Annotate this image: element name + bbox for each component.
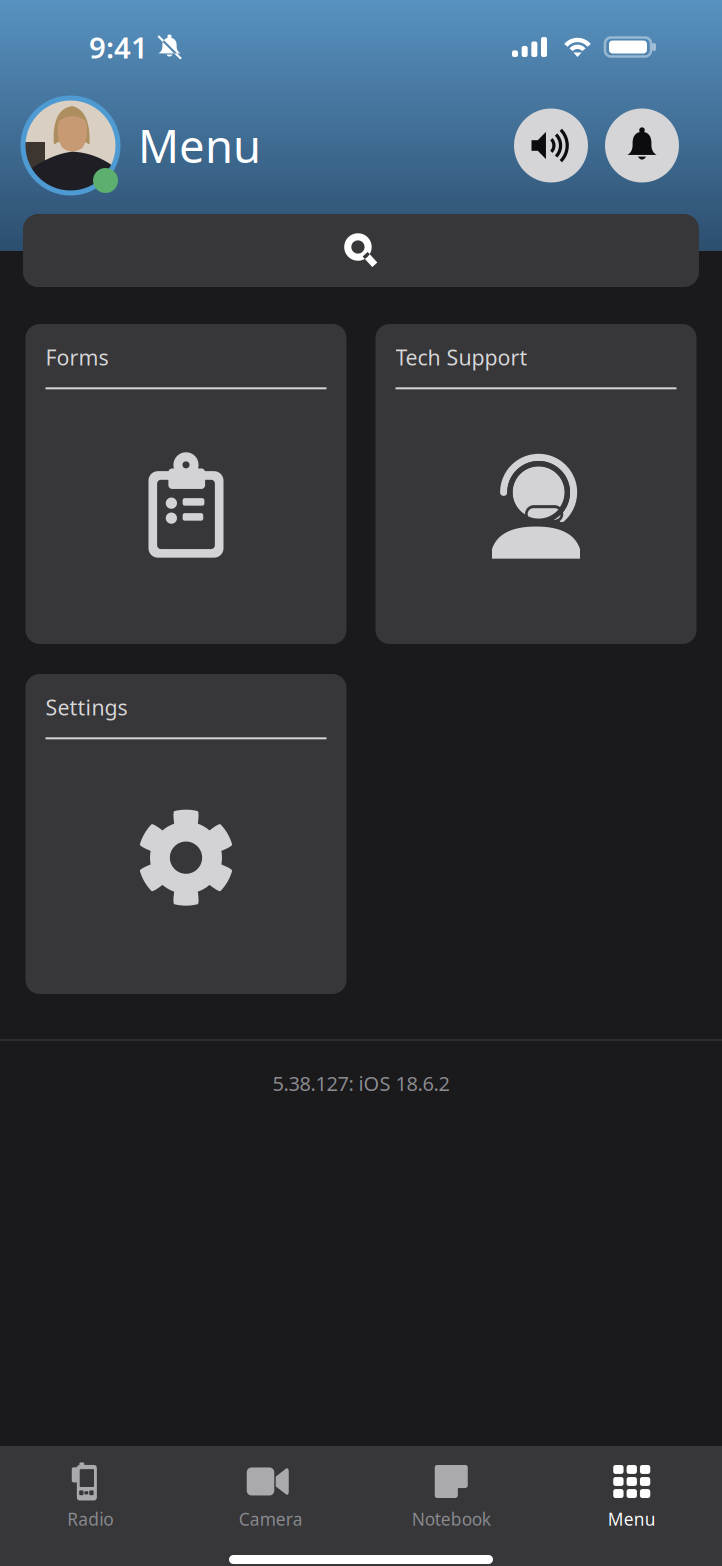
staticText: 9:41 — [89, 27, 148, 66]
button[interactable]: Search — [0, 197, 722, 287]
button[interactable]: Radio — [0, 1461, 180, 1530]
button[interactable]: Sound — [514, 108, 588, 182]
button[interactable]: Notebook — [361, 1461, 541, 1530]
staticText: Menu — [608, 1507, 656, 1530]
button[interactable]: Menu — [541, 1461, 722, 1530]
button[interactable]: Profile — [23, 98, 118, 193]
staticText: Forms — [45, 343, 108, 371]
staticText: Notebook — [412, 1507, 491, 1530]
button[interactable]: Camera — [180, 1461, 361, 1530]
staticText: Camera — [239, 1507, 303, 1530]
button[interactable]: Tech Support — [375, 324, 696, 644]
button[interactable]: Settings — [25, 674, 346, 994]
staticText: 5.38.127: iOS 18.6.2 — [272, 1070, 449, 1097]
button[interactable]: Forms — [25, 324, 346, 644]
button[interactable]: Notifications — [605, 108, 679, 182]
staticText: Menu — [138, 115, 261, 176]
staticText: Radio — [67, 1507, 113, 1530]
staticText: Settings — [45, 693, 127, 721]
staticText: Tech Support — [395, 343, 527, 371]
